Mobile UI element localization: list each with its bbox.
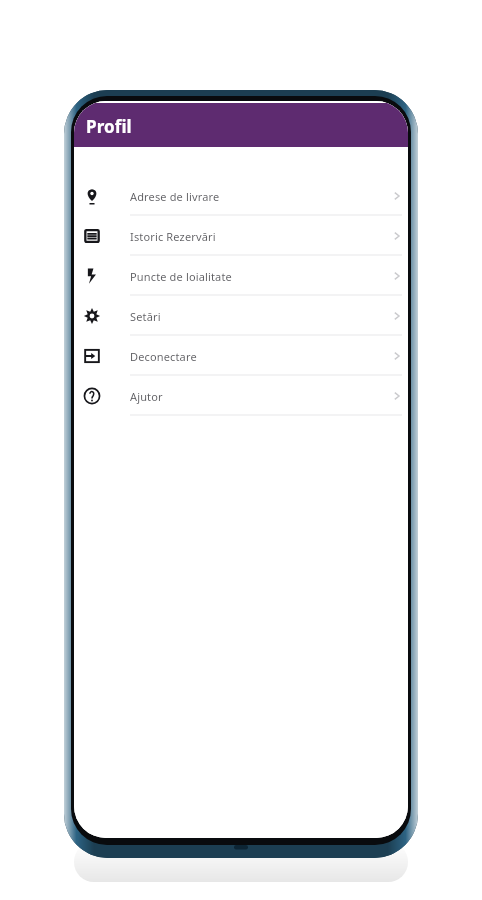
staticText: Adrese de livrare [130,189,220,204]
button[interactable]: Istoric Rezervări [74,216,408,256]
button[interactable]: Puncte de loialitate [74,256,408,296]
staticText: Ajutor [130,389,163,404]
staticText: Deconectare [130,349,197,364]
staticText: Profil [86,115,132,138]
button[interactable]: Deconectare [74,336,408,376]
staticText: Istoric Rezervări [130,229,216,244]
staticText: Puncte de loialitate [130,269,232,284]
button[interactable]: Adrese de livrare [74,176,408,216]
staticText: Setări [130,309,161,324]
button[interactable]: Ajutor [74,376,408,416]
button[interactable]: Setări [74,296,408,336]
